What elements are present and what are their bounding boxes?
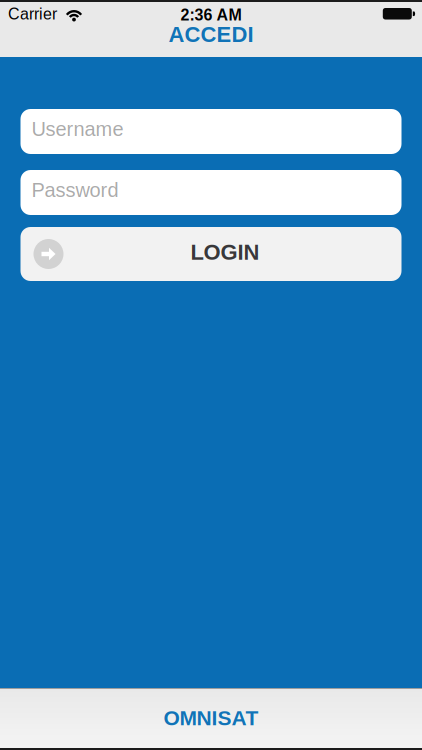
staticText: Password [31,179,118,201]
button[interactable]: OMNISAT [0,689,422,748]
staticText: 2:36 AM [180,6,241,24]
staticText: Username [31,118,123,140]
staticText: LOGIN [190,240,259,264]
staticText: OMNISAT [163,706,258,730]
button[interactable]: LOGIN [20,227,401,281]
staticText: ACCEDI [168,22,253,47]
staticText: Carrier [8,5,57,23]
button[interactable]: Password [20,170,401,215]
button[interactable]: Username [20,109,401,154]
